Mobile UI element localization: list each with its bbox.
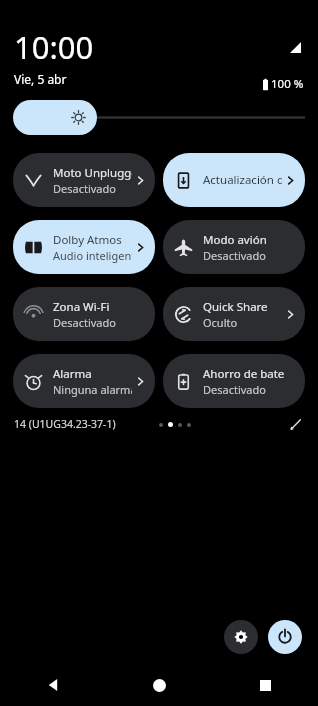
- staticText: Desactivado: [203, 248, 266, 263]
- staticText: Vie, 5 abr: [14, 71, 67, 87]
- staticText: Oculto: [203, 315, 238, 330]
- staticText: Modo avión: [203, 232, 267, 248]
- staticText: Ninguna alarma: [53, 382, 132, 397]
- staticText: Zona Wi-Fi: [53, 299, 110, 315]
- button[interactable]: Ahorro de batería: [163, 354, 305, 408]
- button[interactable]: Edit tiles: [288, 416, 304, 432]
- button[interactable]: Settings: [224, 620, 258, 654]
- button[interactable]: Brightness: [13, 100, 305, 135]
- button[interactable]: Modo avión: [163, 220, 305, 274]
- staticText: 10:00: [14, 26, 94, 68]
- staticText: Alarma: [53, 366, 92, 382]
- button[interactable]: Actualización de: [163, 153, 305, 207]
- button[interactable]: Power: [268, 620, 302, 654]
- staticText: 100 %: [271, 76, 304, 92]
- staticText: Ahorro de batería: [203, 366, 284, 382]
- staticText: Desactivado: [53, 315, 116, 330]
- button[interactable]: Zona Wi-Fi: [13, 287, 155, 341]
- staticText: Desactivado: [203, 382, 266, 397]
- staticText: Quick Share: [203, 299, 268, 315]
- button[interactable]: Recents: [212, 664, 318, 706]
- staticText: 14 (U1UG34.23-37-1): [14, 417, 116, 431]
- staticText: Desactivado: [53, 181, 116, 196]
- button[interactable]: Back: [0, 664, 106, 706]
- button[interactable]: Alarma: [13, 354, 155, 408]
- staticText: Actualización de: [203, 172, 282, 188]
- staticText: Moto Unplugged: [53, 165, 132, 181]
- staticText: Audio inteligente: [53, 248, 132, 263]
- button[interactable]: Dolby Atmos: [13, 220, 155, 274]
- staticText: Dolby Atmos: [53, 232, 122, 248]
- button[interactable]: Quick Share: [163, 287, 305, 341]
- button[interactable]: Moto Unplugged: [13, 153, 155, 207]
- button[interactable]: Home: [106, 664, 212, 706]
